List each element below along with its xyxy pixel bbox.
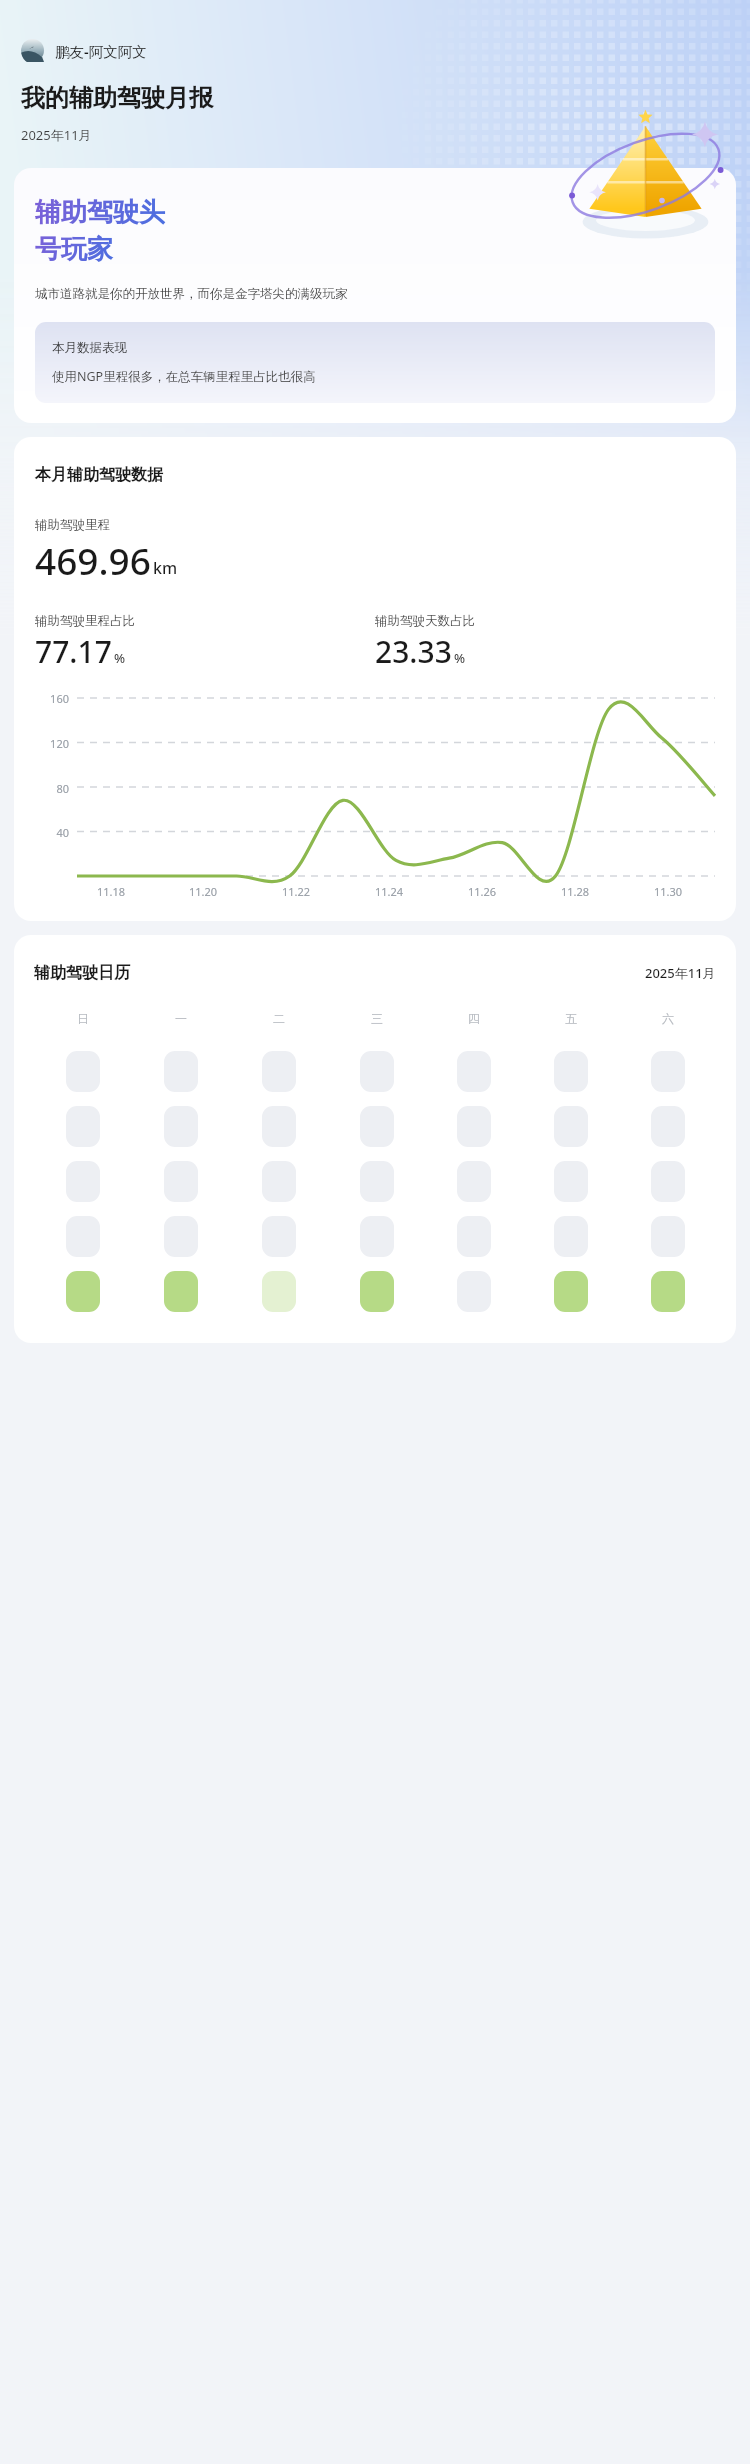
staticText: 鹏友-阿文阿文 — [55, 41, 147, 61]
staticText: 城市道路就是你的开放世界，而你是金字塔尖的满级玩家 — [35, 286, 348, 302]
staticText: 四 — [468, 1011, 480, 1026]
staticText: 本月辅助驾驶数据 — [35, 465, 163, 485]
staticText: 120 — [50, 736, 69, 751]
button[interactable] — [360, 1161, 394, 1202]
staticText: 11.22 — [282, 884, 311, 899]
staticText: 一 — [175, 1011, 187, 1026]
staticText: 11.24 — [375, 884, 404, 899]
button[interactable] — [262, 1051, 296, 1092]
button[interactable] — [262, 1106, 296, 1147]
staticText: 23.33 — [375, 631, 452, 672]
button[interactable] — [554, 1161, 588, 1202]
staticText: 11.18 — [97, 884, 126, 899]
button[interactable] — [360, 1271, 394, 1312]
staticText: 辅助驾驶天数占比 — [375, 613, 475, 629]
button[interactable] — [164, 1106, 198, 1147]
button[interactable] — [262, 1161, 296, 1202]
button[interactable] — [554, 1106, 588, 1147]
staticText: 辅助驾驶里程占比 — [35, 613, 135, 629]
button[interactable] — [651, 1161, 685, 1202]
button[interactable]: Profile avatar — [21, 36, 147, 65]
button[interactable] — [457, 1161, 491, 1202]
button[interactable] — [66, 1216, 100, 1257]
staticText: 160 — [50, 691, 69, 706]
staticText: 77.17 — [35, 631, 112, 672]
button[interactable] — [66, 1051, 100, 1092]
button[interactable] — [457, 1216, 491, 1257]
button[interactable] — [457, 1106, 491, 1147]
button[interactable] — [262, 1216, 296, 1257]
button[interactable]: 本月数据表现 — [35, 322, 715, 403]
button[interactable] — [360, 1106, 394, 1147]
staticText: % — [114, 649, 126, 667]
button[interactable]: 本月辅助驾驶数据 — [14, 437, 736, 921]
other: Profile avatar — [21, 39, 44, 62]
staticText: 六 — [662, 1011, 674, 1026]
button[interactable] — [554, 1051, 588, 1092]
button[interactable] — [554, 1216, 588, 1257]
staticText: 11.30 — [654, 884, 683, 899]
button[interactable] — [164, 1161, 198, 1202]
button[interactable] — [66, 1161, 100, 1202]
staticText: 11.26 — [468, 884, 497, 899]
button[interactable] — [651, 1271, 685, 1312]
staticText: 辅助驾驶头 — [35, 196, 165, 229]
staticText: km — [153, 557, 178, 579]
button[interactable] — [66, 1271, 100, 1312]
button[interactable] — [651, 1216, 685, 1257]
staticText: 二 — [273, 1011, 285, 1026]
button[interactable]: 辅助驾驶日历 — [14, 935, 736, 1343]
staticText: 辅助驾驶里程 — [35, 517, 110, 533]
staticText: 三 — [371, 1011, 383, 1026]
staticText: 我的辅助驾驶月报 — [21, 83, 213, 113]
button[interactable] — [651, 1051, 685, 1092]
staticText: 号玩家 — [35, 233, 113, 266]
button[interactable] — [66, 1106, 100, 1147]
button[interactable] — [164, 1271, 198, 1312]
staticText: 日 — [77, 1011, 89, 1026]
button[interactable] — [164, 1051, 198, 1092]
button[interactable] — [457, 1051, 491, 1092]
staticText: 11.20 — [189, 884, 218, 899]
button[interactable] — [651, 1106, 685, 1147]
staticText: 469.96 — [35, 535, 151, 585]
button[interactable]: 辅助驾驶头 — [14, 168, 736, 423]
button[interactable] — [457, 1271, 491, 1312]
staticText: 五 — [565, 1011, 577, 1026]
staticText: 2025年11月 — [21, 126, 92, 144]
staticText: 40 — [56, 825, 69, 840]
button[interactable] — [360, 1051, 394, 1092]
staticText: 本月数据表现 — [52, 340, 127, 356]
staticText: % — [454, 649, 466, 667]
button[interactable] — [360, 1216, 394, 1257]
staticText: 2025年11月 — [645, 964, 716, 982]
button[interactable] — [554, 1271, 588, 1312]
staticText: 11.28 — [561, 884, 590, 899]
staticText: 80 — [56, 781, 69, 796]
staticText: 辅助驾驶日历 — [34, 963, 130, 983]
staticText: 使用NGP里程很多，在总车辆里程里占比也很高 — [52, 368, 316, 385]
button[interactable] — [164, 1216, 198, 1257]
button[interactable] — [262, 1271, 296, 1312]
